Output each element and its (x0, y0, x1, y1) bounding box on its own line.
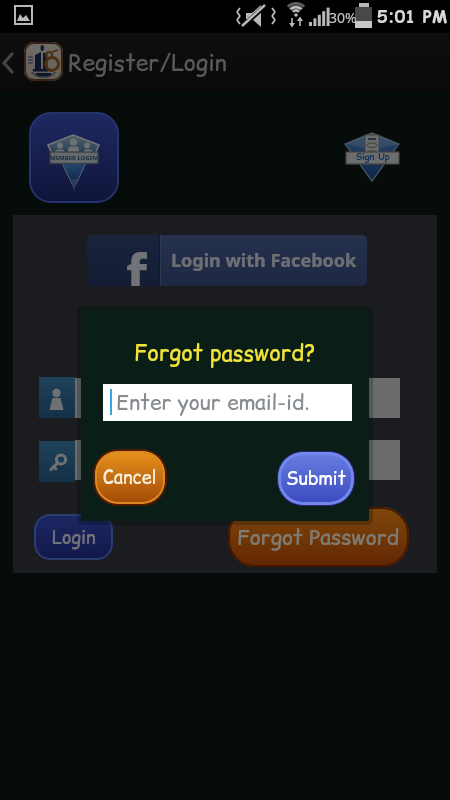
staticText: Submit (286, 466, 347, 491)
staticText: Login (52, 525, 96, 550)
button[interactable]: f (87, 235, 367, 286)
staticText: 5:01 PM (377, 5, 447, 29)
staticText: f (126, 235, 147, 286)
staticText: MEMBER LOGIN (50, 154, 98, 162)
button[interactable]: Sign Up (342, 128, 404, 186)
button[interactable]: Enter your email-id. (103, 384, 352, 421)
button[interactable]: Cancel (93, 449, 167, 506)
button[interactable] (24, 42, 63, 81)
staticText: Login with Facebook (171, 248, 357, 273)
staticText: Cancel (103, 465, 157, 490)
button[interactable]: MEMBER LOGIN (29, 112, 119, 203)
staticText: Forgot password? (134, 338, 316, 369)
staticText: Register/Login (68, 47, 227, 79)
button[interactable]: Submit (277, 451, 355, 506)
button[interactable]: Forgot Password (228, 507, 409, 567)
staticText: Sign Up (356, 151, 390, 164)
staticText: Forgot Password (237, 523, 400, 552)
button[interactable]: Login (34, 514, 113, 560)
staticText: 30% (329, 8, 357, 27)
staticText: Enter your email-id. (116, 388, 310, 417)
